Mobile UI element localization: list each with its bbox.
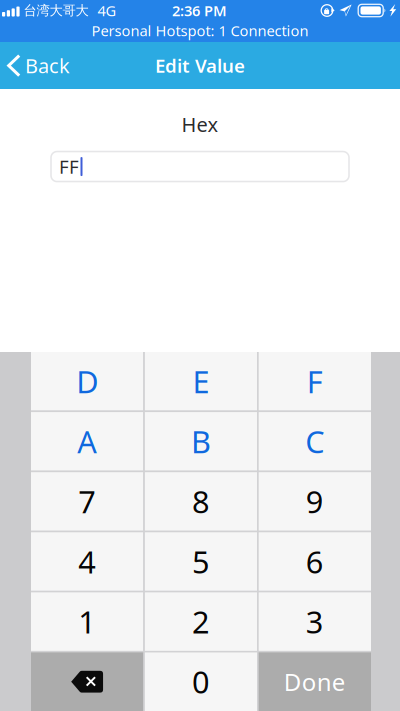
button[interactable]: A [31,412,143,471]
button[interactable]: B [145,412,257,471]
staticText: 6 [306,541,324,582]
button[interactable]: 0 [145,652,257,711]
staticText: 2:36 PM [172,1,227,20]
staticText: 7 [78,481,96,522]
staticText: 0 [192,661,210,702]
button[interactable]: 3 [259,592,371,651]
button[interactable]: Back [0,42,80,89]
staticText: 5 [192,541,210,582]
staticText: A [77,421,97,462]
staticText: 9 [306,481,324,522]
button[interactable]: 1 [31,592,143,651]
button[interactable]: D [31,352,143,411]
button[interactable]: Done [259,652,371,711]
staticText: 3 [306,601,324,642]
staticText: 8 [192,481,210,522]
staticText: Edit Value [155,53,245,78]
staticText: B [191,421,211,462]
button[interactable]: 7 [31,472,143,531]
staticText: Personal Hotspot: 1 Connection [91,21,308,40]
staticText: 2 [192,601,210,642]
button[interactable]: E [145,352,257,411]
button[interactable]: 8 [145,472,257,531]
staticText: E [192,361,209,402]
staticText: 4 [78,541,96,582]
staticText: Done [284,666,346,698]
staticText: C [305,421,324,462]
button[interactable]: C [259,412,371,471]
staticText: F [307,361,323,402]
staticText: 1 [78,601,96,642]
staticText: Hex [181,111,218,138]
button[interactable]: 4 [31,532,143,591]
button[interactable]: Delete [31,652,143,711]
staticText: FF [59,154,79,179]
staticText: 4G [98,1,117,20]
button[interactable]: 6 [259,532,371,591]
button[interactable]: 2 [145,592,257,651]
button[interactable]: F [259,352,371,411]
staticText: Back [25,52,70,79]
button[interactable]: 5 [145,532,257,591]
staticText: 台湾大哥大 [24,2,89,19]
staticText: D [76,361,98,402]
button[interactable]: 9 [259,472,371,531]
